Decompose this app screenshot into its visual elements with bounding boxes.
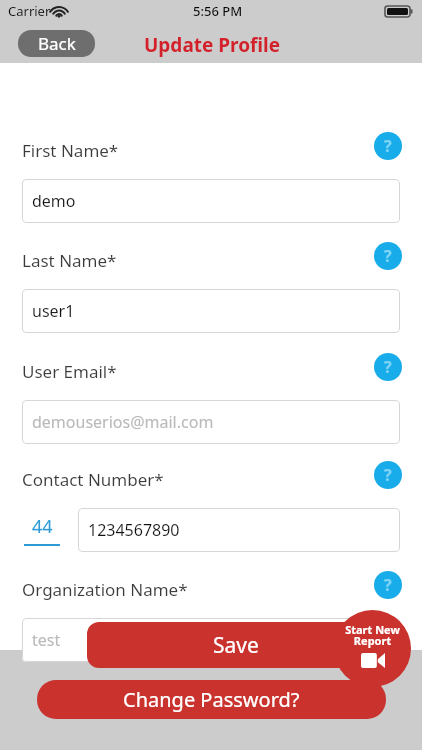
staticText: user1 [32,300,75,322]
staticText: ? [384,464,392,486]
staticText: demouserios@mail.com [32,411,214,433]
staticText: Organization Name* [22,578,188,601]
button[interactable]: Start New Report [334,610,411,687]
staticText: Save [213,631,259,660]
staticText: Back [38,32,76,55]
staticText: User Email* [22,360,117,383]
button[interactable]: Help [374,571,402,599]
staticText: 44 [32,514,53,539]
button[interactable]: test [22,618,400,662]
staticText: First Name* [22,139,119,162]
button[interactable]: Back [18,30,95,57]
button[interactable]: Help [374,242,402,270]
button[interactable]: demouserios@mail.com [22,400,400,444]
button[interactable]: demo [22,179,400,223]
staticText: ? [384,356,392,378]
button[interactable]: 44 [22,508,62,552]
button[interactable]: Change Password? [37,680,386,719]
button[interactable]: Help [374,132,402,160]
button[interactable]: Save [87,622,385,668]
staticText: Contact Number* [22,468,164,491]
staticText: ? [384,135,392,157]
staticText: ? [384,245,392,267]
staticText: 5:56 PM [193,2,243,20]
staticText: Last Name* [22,249,117,272]
staticText: 1234567890 [88,519,180,541]
staticText: test [32,629,61,651]
staticText: Carrier [8,2,51,20]
button[interactable]: user1 [22,289,400,333]
staticText: demo [32,190,76,212]
button[interactable]: Help [374,353,402,381]
button[interactable]: Help [374,461,402,489]
staticText: Start New Report [345,622,400,649]
staticText: Change Password? [123,686,300,713]
staticText: Update Profile [144,32,281,58]
staticText: ? [384,574,392,596]
button[interactable]: 1234567890 [78,508,400,552]
